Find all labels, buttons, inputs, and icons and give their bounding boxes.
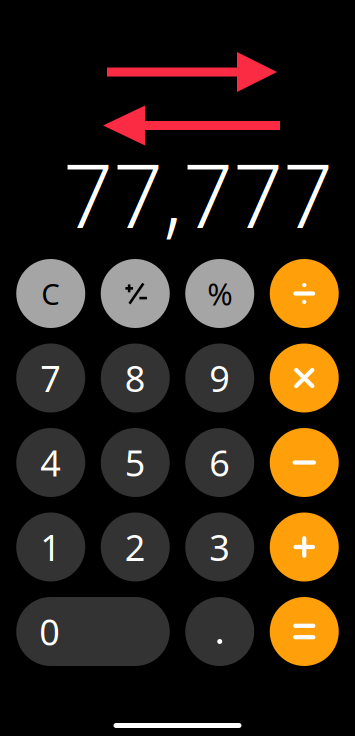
button[interactable]: 4 — [16, 428, 85, 497]
staticText: 77,777 — [63, 136, 333, 253]
button[interactable]: Equals — [270, 597, 339, 666]
button[interactable]: Divide — [270, 259, 339, 328]
staticText: 2 — [125, 523, 146, 571]
button[interactable]: Toggle sign — [101, 259, 170, 328]
staticText: 7 — [40, 354, 61, 402]
staticText: % — [207, 273, 232, 314]
button[interactable]: Add — [270, 512, 339, 581]
button[interactable]: Multiply — [270, 343, 339, 412]
staticText: 8 — [125, 354, 146, 402]
button[interactable]: 1 — [16, 512, 85, 581]
button[interactable]: 8 — [101, 343, 170, 412]
staticText: 1 — [40, 523, 61, 571]
staticText: 5 — [125, 439, 146, 486]
button[interactable]: Subtract — [270, 428, 339, 497]
staticText: 9 — [209, 354, 230, 402]
button[interactable]: Decimal point — [185, 597, 254, 666]
button[interactable]: 7 — [16, 343, 85, 412]
button[interactable]: % — [185, 259, 254, 328]
button[interactable]: C — [16, 259, 85, 328]
staticText: 0 — [39, 608, 60, 655]
button[interactable]: 5 — [101, 428, 170, 497]
staticText: 4 — [40, 439, 61, 486]
button[interactable]: 9 — [185, 343, 254, 412]
staticText: 3 — [209, 523, 230, 571]
button[interactable]: 0 — [16, 597, 170, 666]
button[interactable]: 6 — [185, 428, 254, 497]
button[interactable]: 3 — [185, 512, 254, 581]
staticText: 6 — [209, 439, 230, 486]
staticText: C — [41, 274, 60, 313]
button[interactable]: 2 — [101, 512, 170, 581]
